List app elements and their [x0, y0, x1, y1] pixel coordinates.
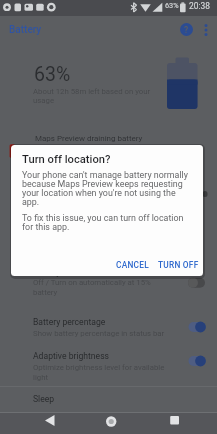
- staticText: 20:38: [189, 1, 210, 11]
- button[interactable]: CANCEL: [111, 256, 153, 274]
- button[interactable]: [200, 22, 212, 38]
- staticText: Turn off location?: [22, 153, 111, 166]
- staticText: Off / Turn on automatically at 15% batte…: [33, 278, 151, 297]
- staticText: Optimize brightness level for available …: [33, 363, 165, 382]
- staticText: 63%: [165, 1, 179, 10]
- staticText: Battery saver: [33, 267, 84, 277]
- button[interactable]: [0, 262, 217, 302]
- staticText: ?: [184, 25, 189, 35]
- button[interactable]: [0, 312, 217, 342]
- staticText: Battery percentage: [33, 317, 106, 327]
- staticText: TURN OFF: [158, 260, 199, 270]
- button[interactable]: [97, 409, 125, 434]
- button[interactable]: [0, 346, 217, 384]
- staticText: Your phone can't manage battery normally…: [22, 170, 188, 208]
- staticText: About 12h 58m left based on your usage: [33, 87, 151, 105]
- staticText: Show battery percentage in status bar: [33, 329, 165, 338]
- staticText: Maps Preview draining battery: [35, 134, 143, 143]
- button[interactable]: [161, 408, 189, 433]
- button[interactable]: [36, 409, 64, 434]
- button[interactable]: TURN OFF: [153, 256, 203, 274]
- staticText: Sleep: [33, 394, 55, 404]
- staticText: CANCEL: [116, 260, 149, 270]
- staticText: Adaptive brightness: [33, 351, 110, 361]
- staticText: Battery: [9, 24, 42, 36]
- staticText: 63%: [34, 63, 71, 86]
- button[interactable]: [0, 390, 217, 412]
- staticText: To fix this issue, you can turn off loca…: [22, 213, 184, 233]
- button[interactable]: ?: [180, 23, 193, 36]
